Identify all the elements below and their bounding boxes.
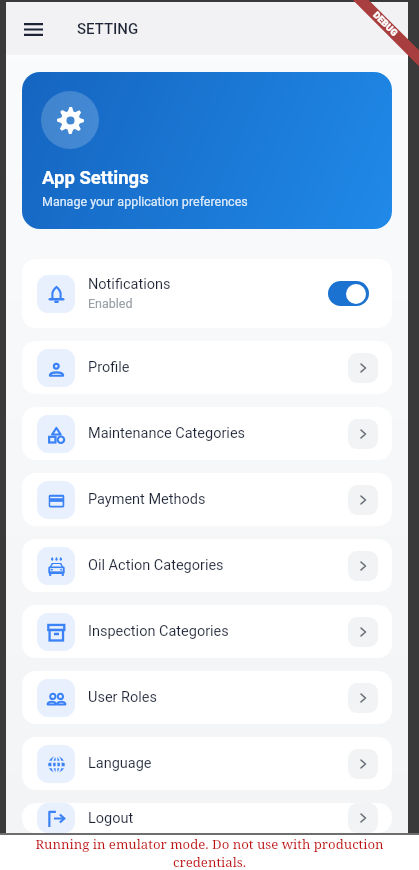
button[interactable]: Open navigation menu xyxy=(12,8,54,50)
button[interactable]: Open xyxy=(348,419,378,449)
button[interactable]: Language xyxy=(22,737,392,790)
staticText: Manage your application preferences xyxy=(42,194,248,209)
staticText: Profile xyxy=(88,359,130,376)
staticText: Inspection Categories xyxy=(88,623,229,640)
button[interactable]: Maintenance Categories xyxy=(22,407,392,460)
staticText: Maintenance Categories xyxy=(88,425,246,442)
button[interactable]: Open xyxy=(348,803,378,833)
button[interactable]: Notifications xyxy=(22,259,392,328)
button[interactable]: Open xyxy=(348,485,378,515)
button[interactable]: Payment Methods xyxy=(22,473,392,526)
button[interactable]: Profile xyxy=(22,341,392,394)
button[interactable]: User Roles xyxy=(22,671,392,724)
button[interactable]: Open xyxy=(348,353,378,383)
staticText: Oil Action Categories xyxy=(88,557,224,574)
button[interactable]: Open xyxy=(348,683,378,713)
button[interactable]: Oil Action Categories xyxy=(22,539,392,592)
button[interactable]: Notifications toggle xyxy=(328,281,369,306)
staticText: App Settings xyxy=(42,167,149,189)
staticText: Logout xyxy=(88,810,134,827)
button[interactable]: Open xyxy=(348,749,378,779)
button[interactable]: App Settings xyxy=(22,72,392,229)
staticText: Enabled xyxy=(88,296,133,311)
staticText: User Roles xyxy=(88,689,157,706)
button[interactable]: Open xyxy=(348,617,378,647)
button[interactable]: Inspection Categories xyxy=(22,605,392,658)
staticText: Notifications xyxy=(88,276,171,293)
staticText: SETTING xyxy=(77,20,139,38)
button[interactable]: Open xyxy=(348,551,378,581)
staticText: Running in emulator mode. Do not use wit… xyxy=(0,835,419,870)
button[interactable]: Logout xyxy=(22,803,392,833)
staticText: Language xyxy=(88,755,152,772)
staticText: Payment Methods xyxy=(88,491,206,508)
